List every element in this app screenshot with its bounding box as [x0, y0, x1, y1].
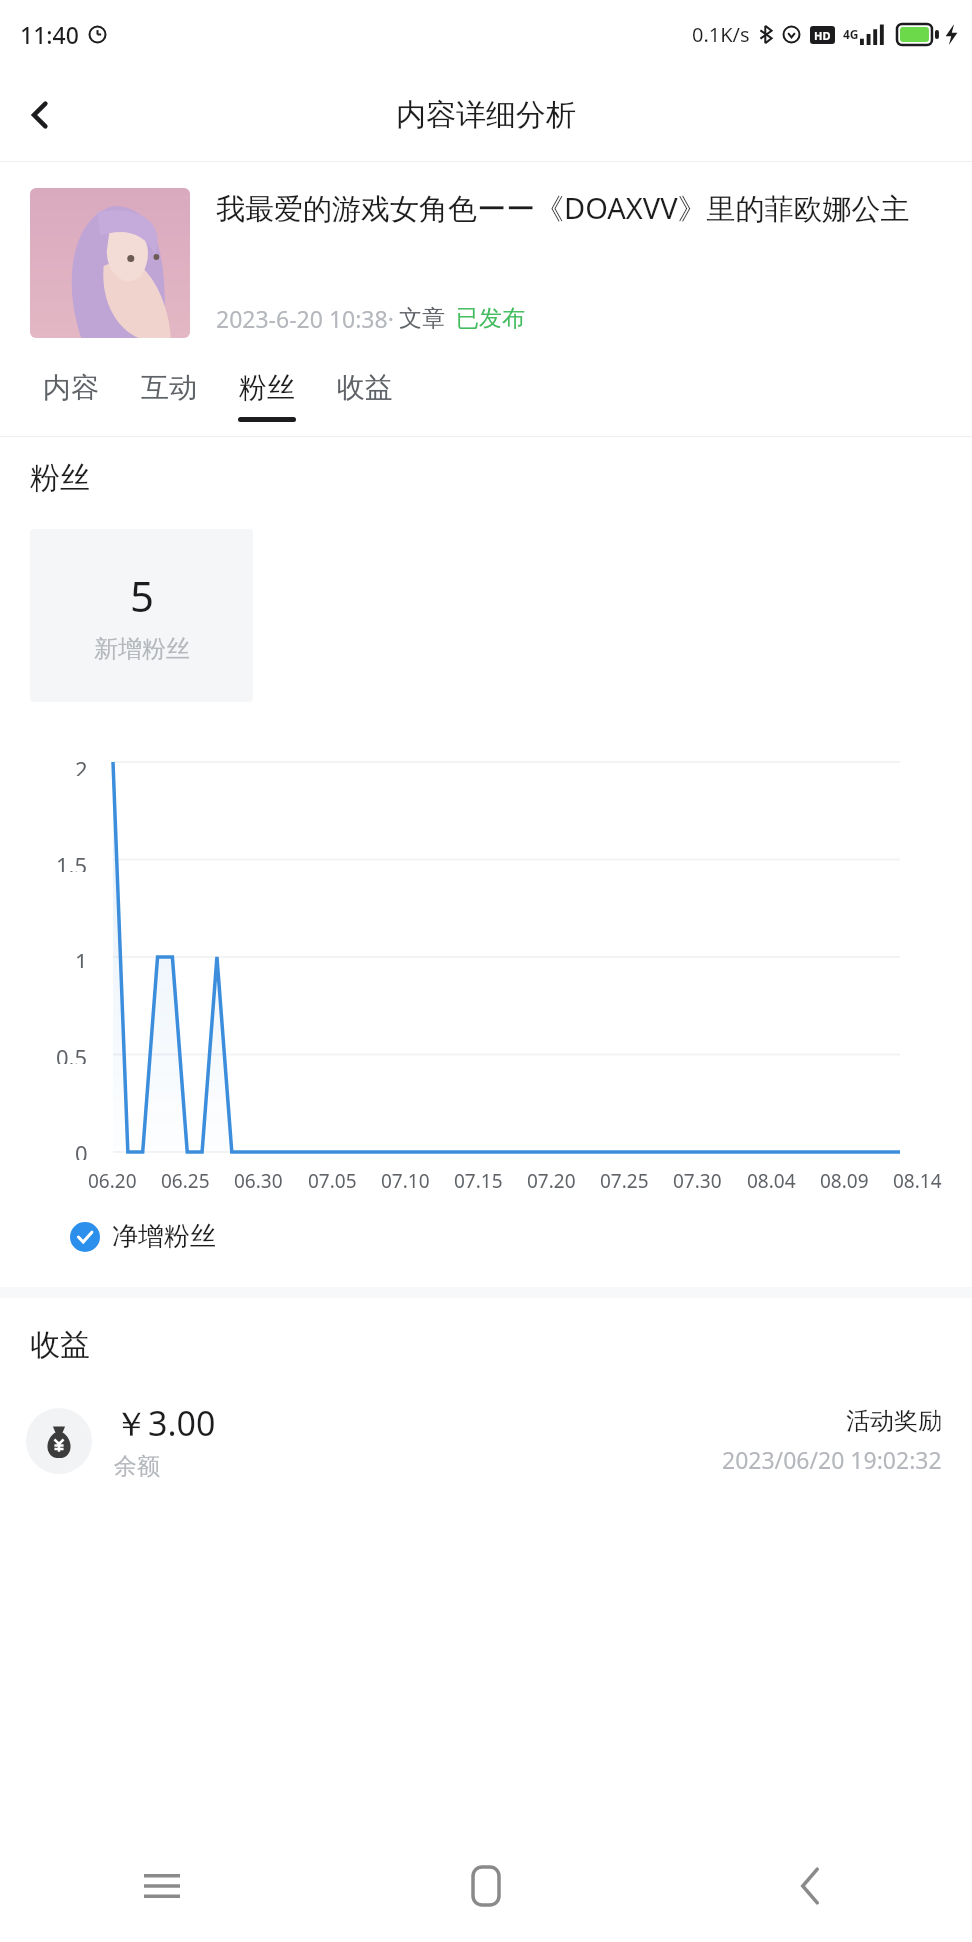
button[interactable]: 互动: [120, 356, 218, 436]
staticText: 1: [75, 946, 88, 968]
button[interactable]: Back: [10, 85, 70, 145]
button[interactable]: 收益: [316, 356, 414, 436]
staticText: 07.30: [673, 1168, 722, 1194]
button[interactable]: ￥3.00: [0, 1400, 972, 1481]
button[interactable]: Back: [648, 1830, 972, 1942]
staticText: 净增粉丝: [112, 1220, 216, 1253]
staticText: 0: [75, 1138, 88, 1160]
staticText: 0.1K/s: [692, 21, 750, 48]
staticText: 06.25: [161, 1168, 210, 1194]
staticText: 0.5: [56, 1042, 88, 1064]
staticText: 4G: [843, 26, 859, 42]
staticText: 新增粉丝: [94, 634, 190, 664]
button[interactable]: 内容: [22, 356, 120, 436]
staticText: 我最爱的游戏女角色ーー《DOAXVV》里的菲欧娜公主: [216, 188, 910, 228]
staticText: 收益: [30, 1326, 90, 1364]
staticText: 07.15: [454, 1168, 503, 1194]
staticText: 粉丝: [30, 459, 90, 497]
staticText: 粉丝: [239, 370, 295, 405]
staticText: 11:40: [20, 19, 79, 50]
staticText: 08.14: [893, 1168, 942, 1194]
staticText: 08.04: [747, 1168, 796, 1194]
staticText: 07.05: [308, 1168, 357, 1194]
staticText: 收益: [337, 370, 393, 405]
staticText: 互动: [141, 370, 197, 405]
staticText: 文章: [399, 304, 445, 333]
staticText: 06.20: [88, 1168, 137, 1194]
staticText: 08.09: [820, 1168, 869, 1194]
button[interactable]: 5: [30, 529, 253, 702]
staticText: 07.25: [600, 1168, 649, 1194]
button[interactable]: 粉丝: [218, 356, 316, 436]
button[interactable]: Recent apps: [0, 1830, 324, 1942]
staticText: 余额: [114, 1452, 160, 1481]
staticText: 2023-6-20 10:38·: [216, 303, 394, 334]
staticText: HD: [814, 28, 831, 43]
button[interactable]: 净增粉丝: [70, 1220, 216, 1253]
staticText: 2023/06/20 19:02:32: [722, 1444, 942, 1475]
staticText: 07.20: [527, 1168, 576, 1194]
staticText: 已发布: [456, 304, 525, 333]
staticText: 活动奖励: [846, 1406, 942, 1436]
staticText: 内容: [43, 370, 99, 405]
staticText: 内容详细分析: [396, 96, 576, 134]
staticText: 2: [75, 754, 88, 776]
staticText: 5: [130, 567, 155, 624]
staticText: ￥3.00: [114, 1400, 216, 1446]
staticText: 07.10: [381, 1168, 430, 1194]
button[interactable]: Home: [324, 1830, 648, 1942]
staticText: 1.5: [56, 850, 88, 872]
staticText: 06.30: [234, 1168, 283, 1194]
